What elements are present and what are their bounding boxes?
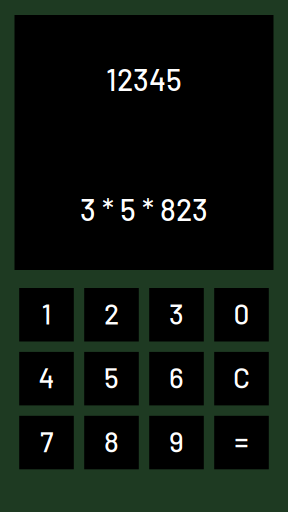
button[interactable]: 9 <box>149 416 204 469</box>
button[interactable]: 0 <box>214 288 269 341</box>
staticText: 9 <box>169 424 184 458</box>
button[interactable]: = <box>214 416 269 469</box>
staticText: 12345 <box>106 61 182 97</box>
button[interactable]: 7 <box>19 416 74 469</box>
staticText: 1 <box>41 296 51 330</box>
button[interactable]: 6 <box>149 352 204 405</box>
staticText: = <box>234 424 248 458</box>
button[interactable]: C <box>214 352 269 405</box>
staticText: 6 <box>169 360 184 394</box>
button[interactable]: 2 <box>84 288 139 341</box>
button[interactable]: 3 <box>149 288 204 341</box>
button[interactable]: 8 <box>84 416 139 469</box>
staticText: 5 <box>104 360 119 394</box>
staticText: 2 <box>104 296 119 330</box>
button[interactable]: 1 <box>19 288 74 341</box>
button[interactable]: 5 <box>84 352 139 405</box>
staticText: 3 * 5 * 823 <box>80 191 208 227</box>
staticText: C <box>233 360 250 394</box>
button[interactable]: 4 <box>19 352 74 405</box>
staticText: 8 <box>104 424 119 458</box>
staticText: 3 <box>169 296 184 330</box>
staticText: 7 <box>40 424 53 458</box>
staticText: 4 <box>38 360 54 394</box>
staticText: 0 <box>233 296 249 330</box>
